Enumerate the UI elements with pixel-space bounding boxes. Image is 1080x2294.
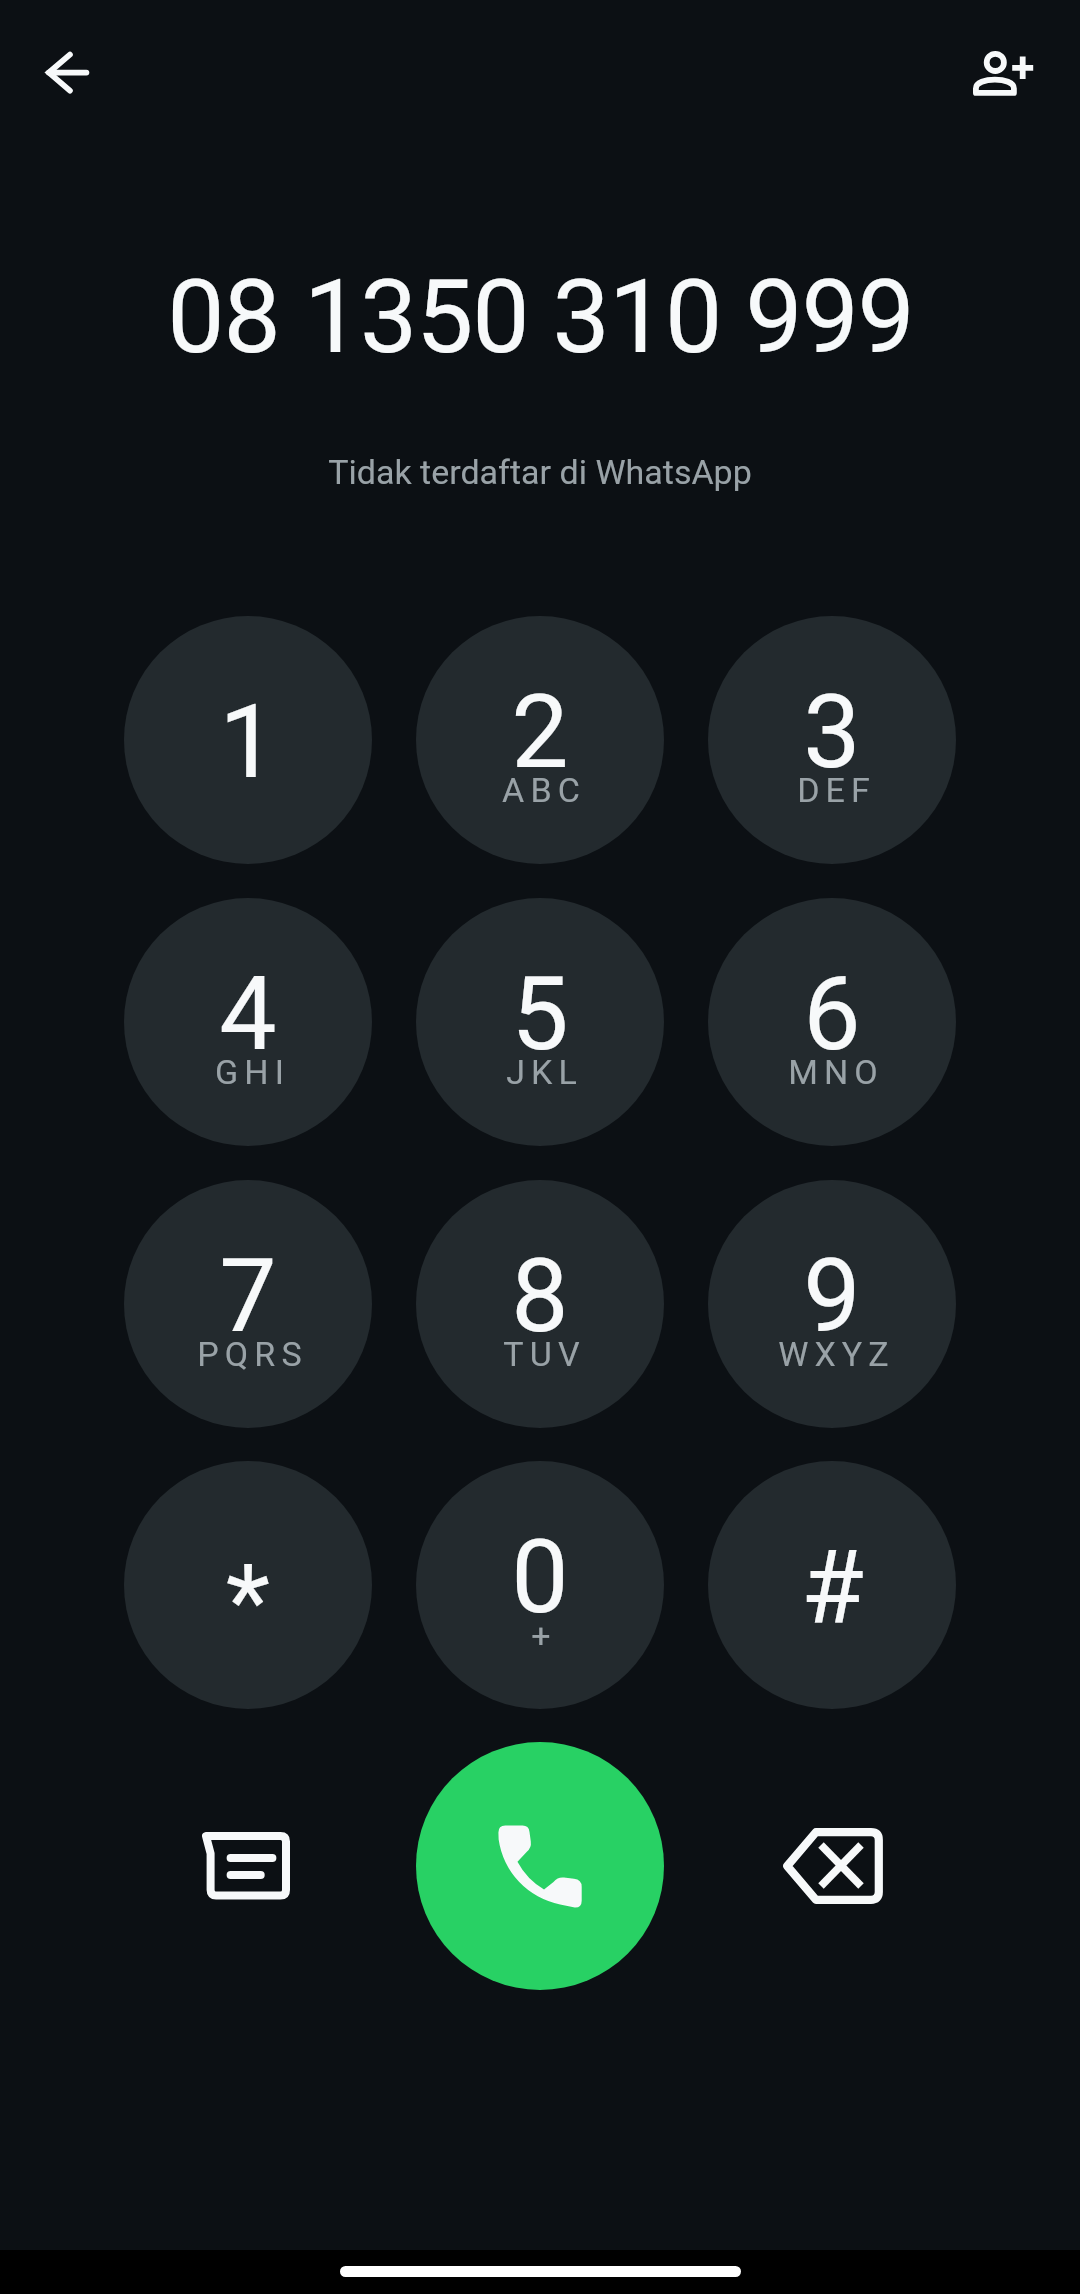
button[interactable]: *	[124, 1461, 372, 1709]
button[interactable]: 0	[416, 1461, 664, 1709]
staticText: PQRS	[197, 1334, 308, 1374]
staticText: *	[226, 1542, 270, 1662]
button[interactable]: 9	[708, 1180, 956, 1428]
button[interactable]: 2	[416, 616, 664, 864]
button[interactable]: 7	[124, 1180, 372, 1428]
staticText: 1	[219, 682, 277, 802]
staticText: MNO	[788, 1052, 884, 1092]
staticText: 08 1350 310 999	[167, 257, 914, 377]
staticText: 3	[803, 672, 861, 792]
staticText: 9	[803, 1236, 861, 1356]
staticText: 8	[511, 1236, 569, 1356]
staticText: GHI	[215, 1052, 290, 1092]
button[interactable]: Call	[416, 1742, 664, 1990]
staticText: ABC	[502, 770, 586, 810]
button[interactable]: 3	[708, 616, 956, 864]
button[interactable]: 1	[124, 616, 372, 864]
staticText: 5	[511, 954, 569, 1074]
button[interactable]: Back	[24, 29, 112, 117]
button[interactable]: Backspace	[763, 1796, 903, 1936]
staticText: DEF	[797, 770, 876, 810]
button[interactable]: 5	[416, 898, 664, 1146]
staticText: 4	[219, 954, 277, 1074]
button[interactable]: 4	[124, 898, 372, 1146]
staticText: +	[531, 1615, 557, 1655]
staticText: 7	[219, 1236, 277, 1356]
staticText: JKL	[506, 1052, 583, 1092]
staticText: Tidak terdaftar di WhatsApp	[328, 452, 752, 492]
staticText: 0	[511, 1517, 569, 1637]
button[interactable]: Add contact	[958, 28, 1050, 120]
staticText: WXYZ	[778, 1334, 895, 1374]
staticText: TUV	[503, 1334, 586, 1374]
button[interactable]: 8	[416, 1180, 664, 1428]
staticText: #	[801, 1527, 864, 1647]
button[interactable]: 6	[708, 898, 956, 1146]
button[interactable]: Message	[176, 1796, 316, 1936]
staticText: 6	[803, 954, 861, 1074]
staticText: 2	[511, 672, 569, 792]
button[interactable]: #	[708, 1461, 956, 1709]
